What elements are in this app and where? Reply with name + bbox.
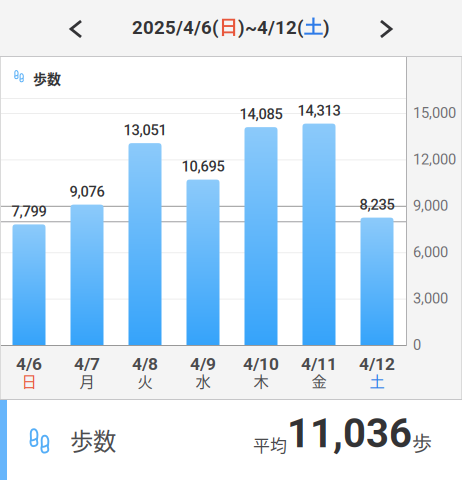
staticText: 8,235 — [359, 196, 394, 213]
staticText: 4/7 — [74, 354, 100, 374]
staticText: 月 — [79, 369, 94, 392]
staticText: 土 — [304, 16, 323, 39]
staticText: 金 — [311, 369, 326, 392]
staticText: 歩数 — [70, 423, 116, 457]
staticText: 11,036 — [287, 410, 412, 457]
staticText: 4/8 — [132, 354, 158, 374]
staticText: 日 — [219, 16, 238, 39]
button[interactable]: Previous week — [53, 6, 99, 52]
staticText: 13,051 — [123, 122, 166, 139]
staticText: 平均 — [253, 432, 287, 457]
staticText: 火 — [137, 369, 152, 392]
staticText: 水 — [195, 369, 210, 392]
staticText: 10,695 — [181, 158, 224, 175]
staticText: 6,000 — [413, 244, 448, 261]
staticText: 14,085 — [239, 106, 282, 123]
staticText: 9,076 — [69, 183, 104, 200]
staticText: 14,313 — [297, 102, 340, 119]
staticText: 4/6 — [16, 354, 42, 374]
staticText: 土 — [369, 369, 384, 392]
staticText: 4/10 — [243, 354, 279, 374]
staticText: 3,000 — [413, 290, 448, 307]
button[interactable]: Next week — [363, 6, 409, 52]
staticText: 歩 — [412, 428, 432, 457]
staticText: 9,000 — [413, 197, 448, 214]
staticText: 12,000 — [413, 151, 456, 168]
staticText: 4/9 — [190, 354, 216, 374]
staticText: 4/11 — [301, 354, 337, 374]
staticText: 歩数 — [33, 68, 61, 88]
staticText: 木 — [253, 369, 268, 392]
staticText: ) — [323, 17, 330, 38]
staticText: 4/12 — [359, 354, 395, 374]
staticText: 0 — [413, 336, 421, 354]
staticText: 15,000 — [413, 104, 456, 122]
staticText: )~4/12( — [238, 17, 304, 38]
button[interactable]: 歩数 — [0, 400, 462, 480]
staticText: 日 — [21, 369, 36, 392]
staticText: 7,799 — [11, 203, 46, 220]
staticText: 2025/4/6( — [132, 17, 219, 38]
